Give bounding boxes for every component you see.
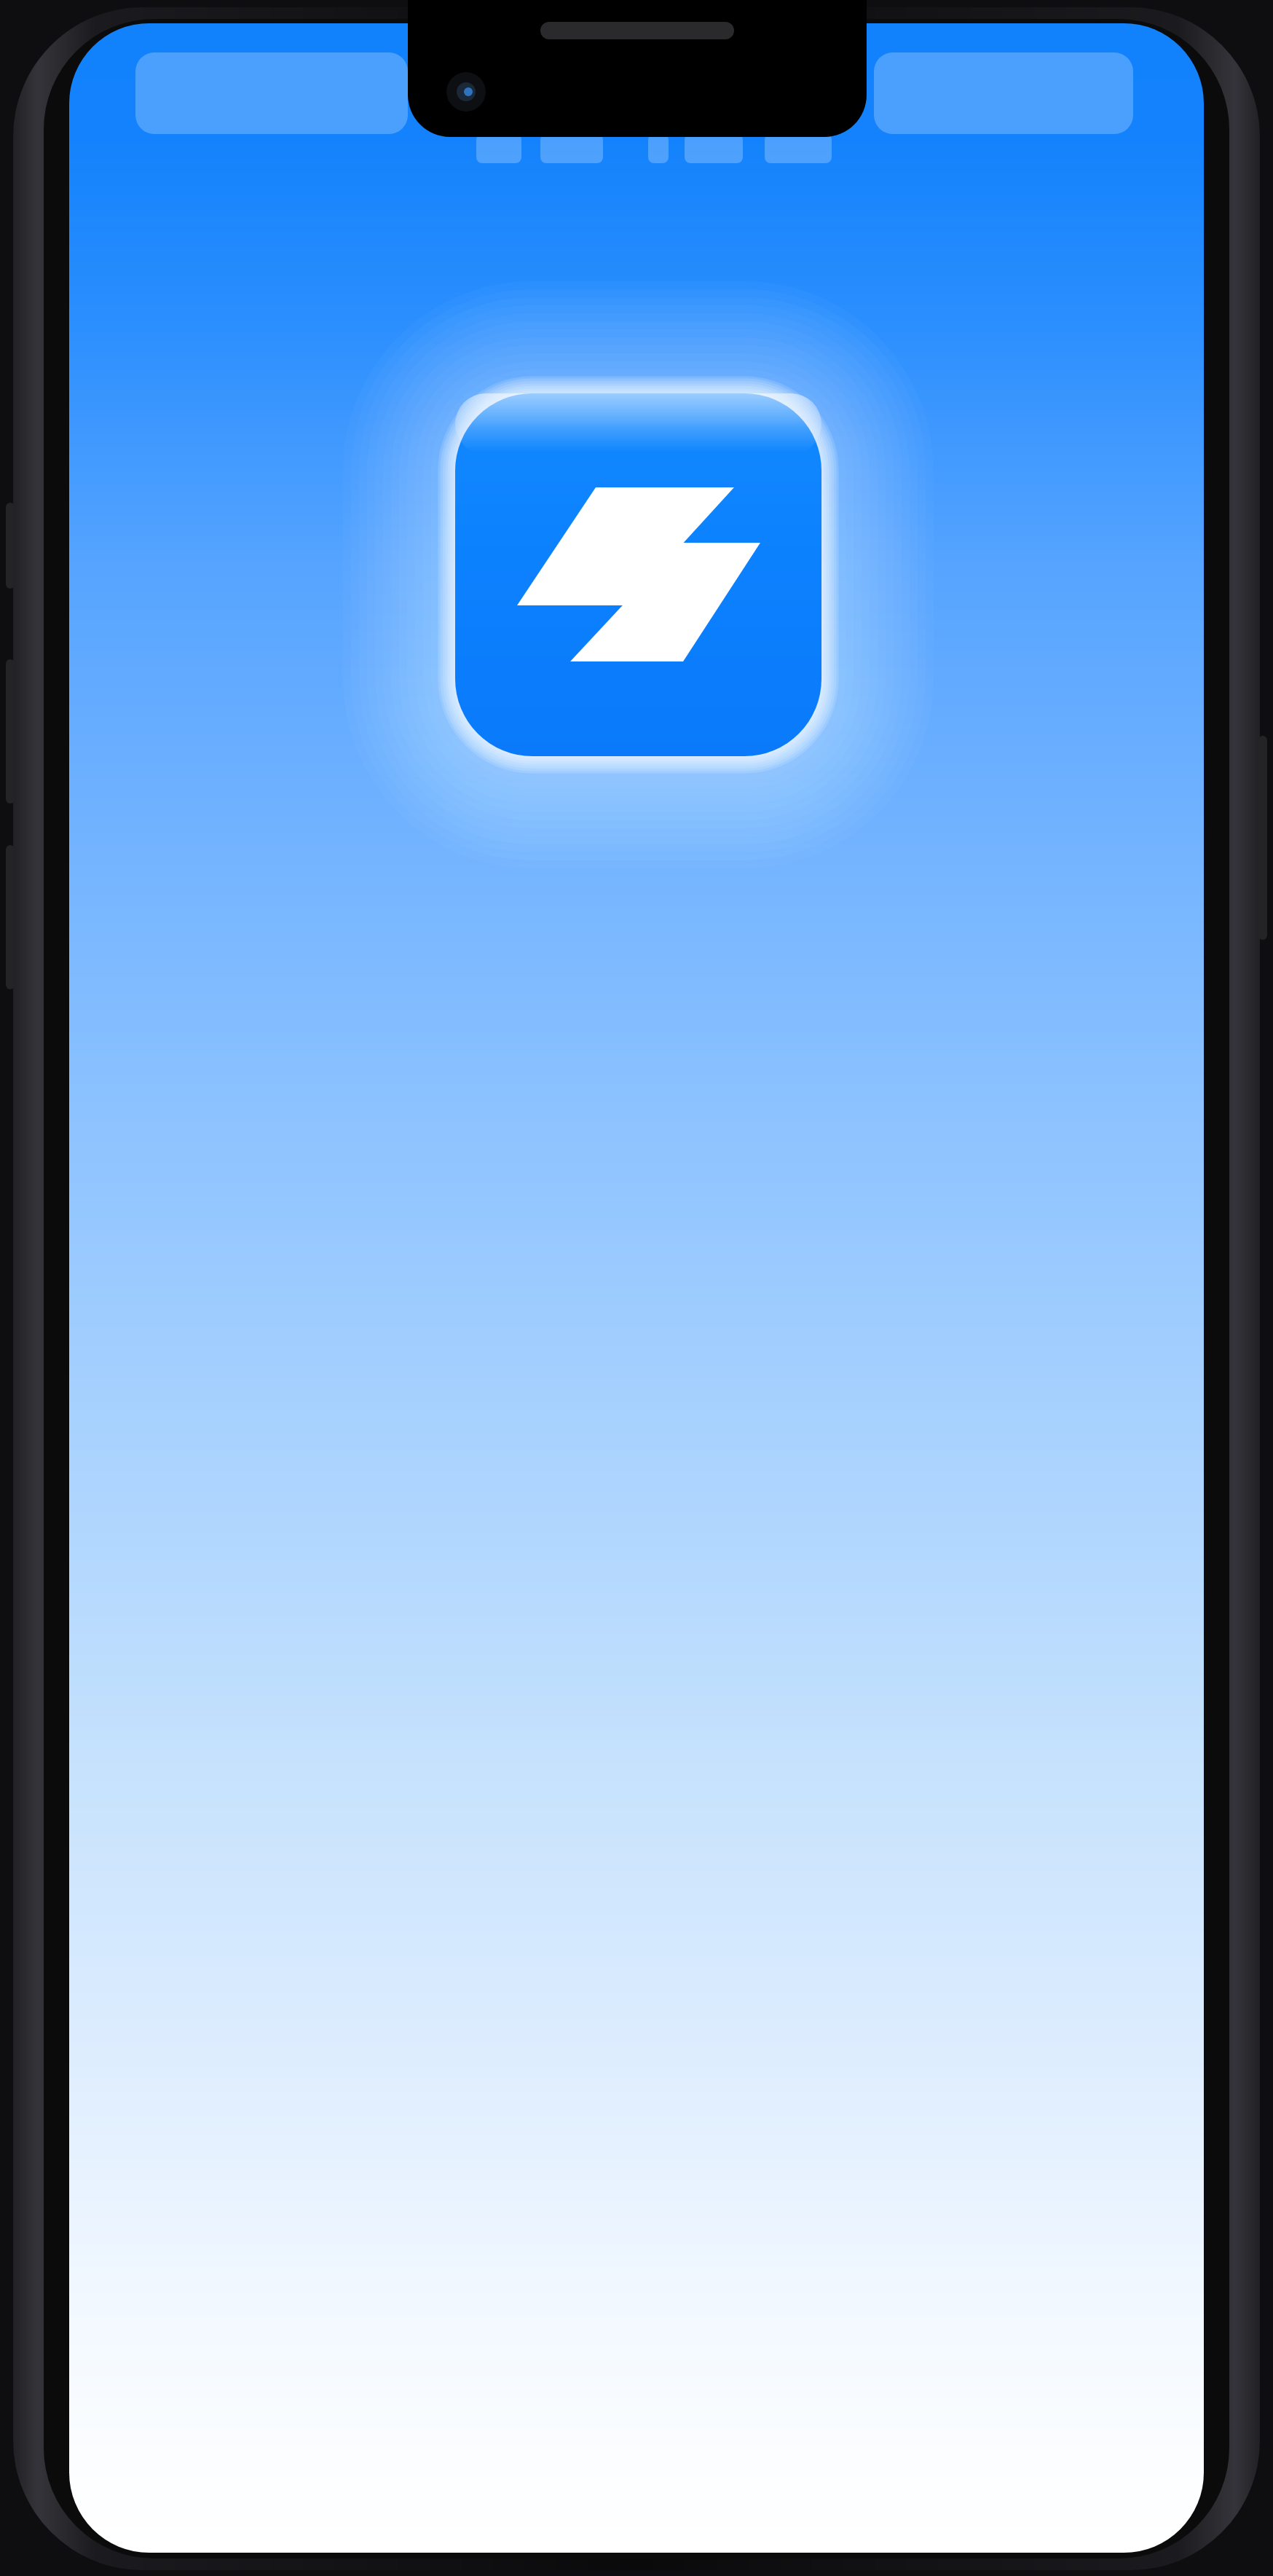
button[interactable]: App logo splash bbox=[0, 0, 1273, 2576]
